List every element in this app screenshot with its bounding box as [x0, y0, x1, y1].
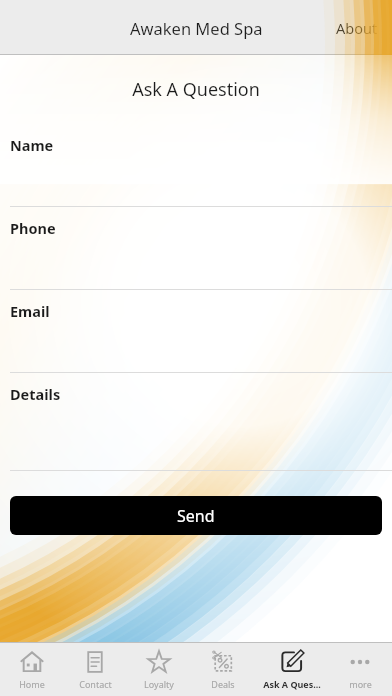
button[interactable]: Deals — [191, 643, 255, 696]
button[interactable]: Name — [0, 124, 392, 207]
staticText: Home — [19, 678, 45, 690]
button[interactable]: Send — [10, 496, 382, 535]
staticText: About — [336, 18, 378, 38]
staticText: Deals — [211, 678, 235, 690]
staticText: Ask A Question — [0, 77, 392, 102]
button[interactable]: more — [328, 643, 392, 696]
staticText: Send — [177, 505, 215, 527]
staticText: Awaken Med Spa — [130, 17, 263, 39]
staticText: Details — [10, 384, 61, 404]
button[interactable]: Details — [0, 373, 392, 471]
staticText: Name — [10, 135, 54, 155]
button[interactable]: Loyalty — [127, 643, 191, 696]
button[interactable]: Home — [0, 643, 63, 696]
staticText: more — [349, 678, 372, 690]
button[interactable]: Phone — [0, 207, 392, 290]
staticText: Email — [10, 301, 50, 321]
button[interactable]: Email — [0, 290, 392, 373]
staticText: Loyalty — [144, 678, 174, 690]
staticText: Phone — [10, 218, 56, 238]
staticText: Contact — [79, 678, 112, 690]
button[interactable]: About — [322, 8, 392, 48]
button[interactable]: Ask A Ques... — [255, 643, 328, 696]
button[interactable]: Contact — [63, 643, 127, 696]
staticText: Ask A Ques... — [263, 678, 321, 690]
